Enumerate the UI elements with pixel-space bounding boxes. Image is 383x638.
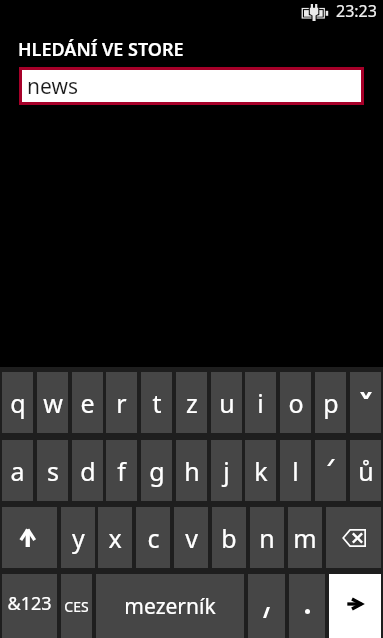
button[interactable]: Enter <box>329 574 381 638</box>
button[interactable]: a <box>2 440 33 501</box>
staticText: e <box>80 386 95 420</box>
button[interactable]: e <box>72 372 103 433</box>
staticText: o <box>288 386 304 420</box>
button[interactable]: c <box>136 507 170 568</box>
button[interactable]: t <box>141 372 172 433</box>
staticText: HLEDÁNÍ VE STORE <box>18 37 184 62</box>
button[interactable]: z <box>176 372 207 433</box>
staticText: m <box>293 521 317 555</box>
staticText: n <box>259 521 275 555</box>
staticText: v <box>185 521 198 555</box>
button[interactable]: x <box>98 507 132 568</box>
button[interactable]: n <box>250 507 284 568</box>
staticText: &123 <box>7 591 52 616</box>
staticText: CES <box>64 597 89 616</box>
button[interactable]: w <box>37 372 68 433</box>
button[interactable]: Backspace <box>326 507 381 568</box>
button[interactable]: Comma <box>248 574 285 638</box>
button[interactable]: g <box>141 440 172 501</box>
button[interactable]: y <box>61 507 95 568</box>
staticText: h <box>184 454 200 488</box>
staticText: w <box>43 386 63 420</box>
button[interactable]: l <box>280 440 311 501</box>
button[interactable]: k <box>245 440 276 501</box>
button[interactable]: j <box>211 440 242 501</box>
button[interactable]: ů <box>350 440 381 501</box>
staticText: f <box>117 454 126 488</box>
staticText: j <box>223 454 230 488</box>
staticText: y <box>72 521 85 555</box>
button[interactable]: Symbols <box>2 574 57 638</box>
button[interactable]: r <box>106 372 137 433</box>
button[interactable]: i <box>245 372 276 433</box>
staticText: r <box>116 386 127 420</box>
button[interactable]: p <box>315 372 346 433</box>
button[interactable]: Language CES <box>61 574 92 638</box>
staticText: ů <box>358 454 374 488</box>
staticText: x <box>108 521 122 555</box>
staticText: k <box>254 454 268 488</box>
staticText: d <box>80 454 96 488</box>
staticText: news <box>27 72 78 101</box>
staticText: mezerník <box>124 592 216 621</box>
button[interactable]: Shift <box>2 507 57 568</box>
staticText: z <box>186 386 198 420</box>
button[interactable]: Acute dead key <box>315 440 346 501</box>
staticText: p <box>323 386 339 420</box>
button[interactable]: Caron dead key <box>350 372 381 433</box>
staticText: t <box>152 386 162 420</box>
button[interactable]: u <box>211 372 242 433</box>
staticText: a <box>10 454 25 488</box>
button[interactable]: news <box>22 70 361 102</box>
staticText: s <box>47 454 59 488</box>
button[interactable]: o <box>280 372 311 433</box>
button[interactable]: Period <box>289 574 325 638</box>
button[interactable]: m <box>288 507 322 568</box>
button[interactable]: s <box>37 440 68 501</box>
button[interactable]: h <box>176 440 207 501</box>
staticText: q <box>10 386 26 420</box>
button[interactable]: d <box>72 440 103 501</box>
staticText: 23:23 <box>336 0 377 22</box>
staticText: g <box>149 454 165 488</box>
staticText: b <box>221 521 237 555</box>
staticText: i <box>257 386 264 420</box>
button[interactable]: b <box>212 507 246 568</box>
button[interactable]: v <box>174 507 208 568</box>
staticText: l <box>292 454 299 488</box>
button[interactable]: f <box>106 440 137 501</box>
button[interactable]: q <box>2 372 33 433</box>
staticText: u <box>219 386 235 420</box>
staticText: c <box>147 521 160 555</box>
button[interactable]: mezerník <box>96 574 244 638</box>
